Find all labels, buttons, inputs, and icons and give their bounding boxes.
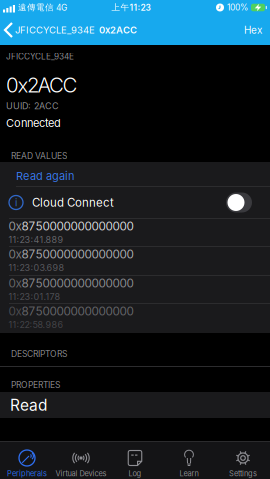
- staticText: 0x: [8, 247, 21, 261]
- staticText: Virtual Devices: [55, 469, 106, 478]
- staticText: 0x2ACC: [99, 24, 137, 36]
- staticText: 8750000000000000: [21, 247, 133, 261]
- button[interactable]: Log: [108, 442, 162, 479]
- staticText: 11:23:41.889: [8, 234, 63, 245]
- staticText: Hex: [244, 24, 262, 36]
- button[interactable]: JFICCYCLE_934E: [0, 23, 95, 37]
- staticText: 上午11:23: [111, 2, 150, 13]
- staticText: i: [15, 196, 17, 209]
- staticText: 0x: [8, 304, 21, 318]
- button[interactable]: Peripherals: [0, 442, 54, 479]
- staticText: JFICCYCLE_934E: [15, 24, 95, 36]
- staticText: Cloud Connect: [32, 195, 114, 209]
- button[interactable]: Hex: [244, 24, 270, 36]
- staticText: Settings: [229, 469, 257, 478]
- staticText: 8750000000000000: [21, 219, 133, 233]
- staticText: 遠傳電信 4G: [18, 2, 67, 13]
- staticText: Read again: [16, 169, 74, 183]
- staticText: 0x: [8, 276, 21, 290]
- staticText: 0x: [8, 219, 21, 233]
- staticText: 11:23:01.178: [8, 291, 60, 302]
- button[interactable]: Cloud Connect: [226, 192, 252, 212]
- staticText: 8750000000000000: [21, 276, 133, 290]
- staticText: 11:23:03.698: [8, 262, 64, 273]
- button[interactable]: Virtual Devices: [54, 442, 108, 479]
- staticText: UUID: 2ACC: [6, 101, 59, 111]
- staticText: PROPERTIES: [11, 380, 60, 390]
- staticText: Learn: [179, 469, 198, 478]
- button[interactable]: Read again: [0, 162, 270, 187]
- staticText: JFICCYCLE_934E: [6, 51, 74, 61]
- staticText: Log: [128, 469, 141, 478]
- staticText: Read: [10, 396, 47, 414]
- button[interactable]: Learn: [162, 442, 216, 479]
- staticText: Peripherals: [7, 469, 47, 478]
- staticText: 0x2ACC: [6, 73, 77, 97]
- staticText: Connected: [6, 116, 61, 130]
- staticText: DESCRIPTORS: [11, 349, 67, 359]
- staticText: READ VALUES: [11, 151, 67, 161]
- staticText: 11:22:58.986: [8, 319, 63, 330]
- staticText: 100%: [227, 2, 248, 13]
- staticText: 8750000000000000: [21, 304, 133, 318]
- button[interactable]: Settings: [216, 442, 270, 479]
